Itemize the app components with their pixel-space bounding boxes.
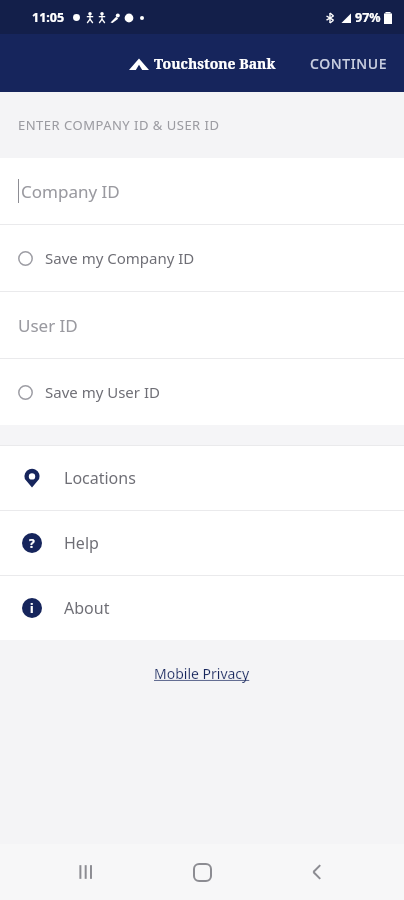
button[interactable]: Back xyxy=(289,844,345,900)
button[interactable]: Save my Company ID xyxy=(0,225,404,291)
staticText: Save my Company ID xyxy=(45,248,195,268)
button[interactable]: CONTINUE xyxy=(294,42,404,85)
button[interactable]: Home xyxy=(174,844,230,900)
staticText: Touchstone Bank xyxy=(154,54,276,73)
staticText: ? xyxy=(29,535,35,551)
button[interactable]: Company ID xyxy=(0,158,404,224)
staticText: About xyxy=(64,597,110,619)
button[interactable]: Save my User ID xyxy=(0,359,404,425)
staticText: 97% xyxy=(355,9,381,26)
staticText: Company ID xyxy=(21,180,120,203)
button[interactable]: i xyxy=(0,576,404,640)
staticText: User ID xyxy=(18,314,78,337)
button[interactable]: Locations xyxy=(0,446,404,510)
staticText: Mobile Privacy xyxy=(154,664,250,683)
staticText: Help xyxy=(64,532,99,554)
button[interactable]: Recent apps xyxy=(59,844,115,900)
button[interactable]: ? xyxy=(0,511,404,575)
staticText: CONTINUE xyxy=(310,54,388,73)
staticText: Save my User ID xyxy=(45,382,160,402)
staticText: 11:05 xyxy=(32,9,65,26)
button[interactable]: User ID xyxy=(0,292,404,358)
staticText: ENTER COMPANY ID & USER ID xyxy=(18,116,220,134)
staticText: Locations xyxy=(64,467,136,489)
button[interactable]: Mobile Privacy xyxy=(146,658,258,689)
staticText: i xyxy=(30,600,34,616)
